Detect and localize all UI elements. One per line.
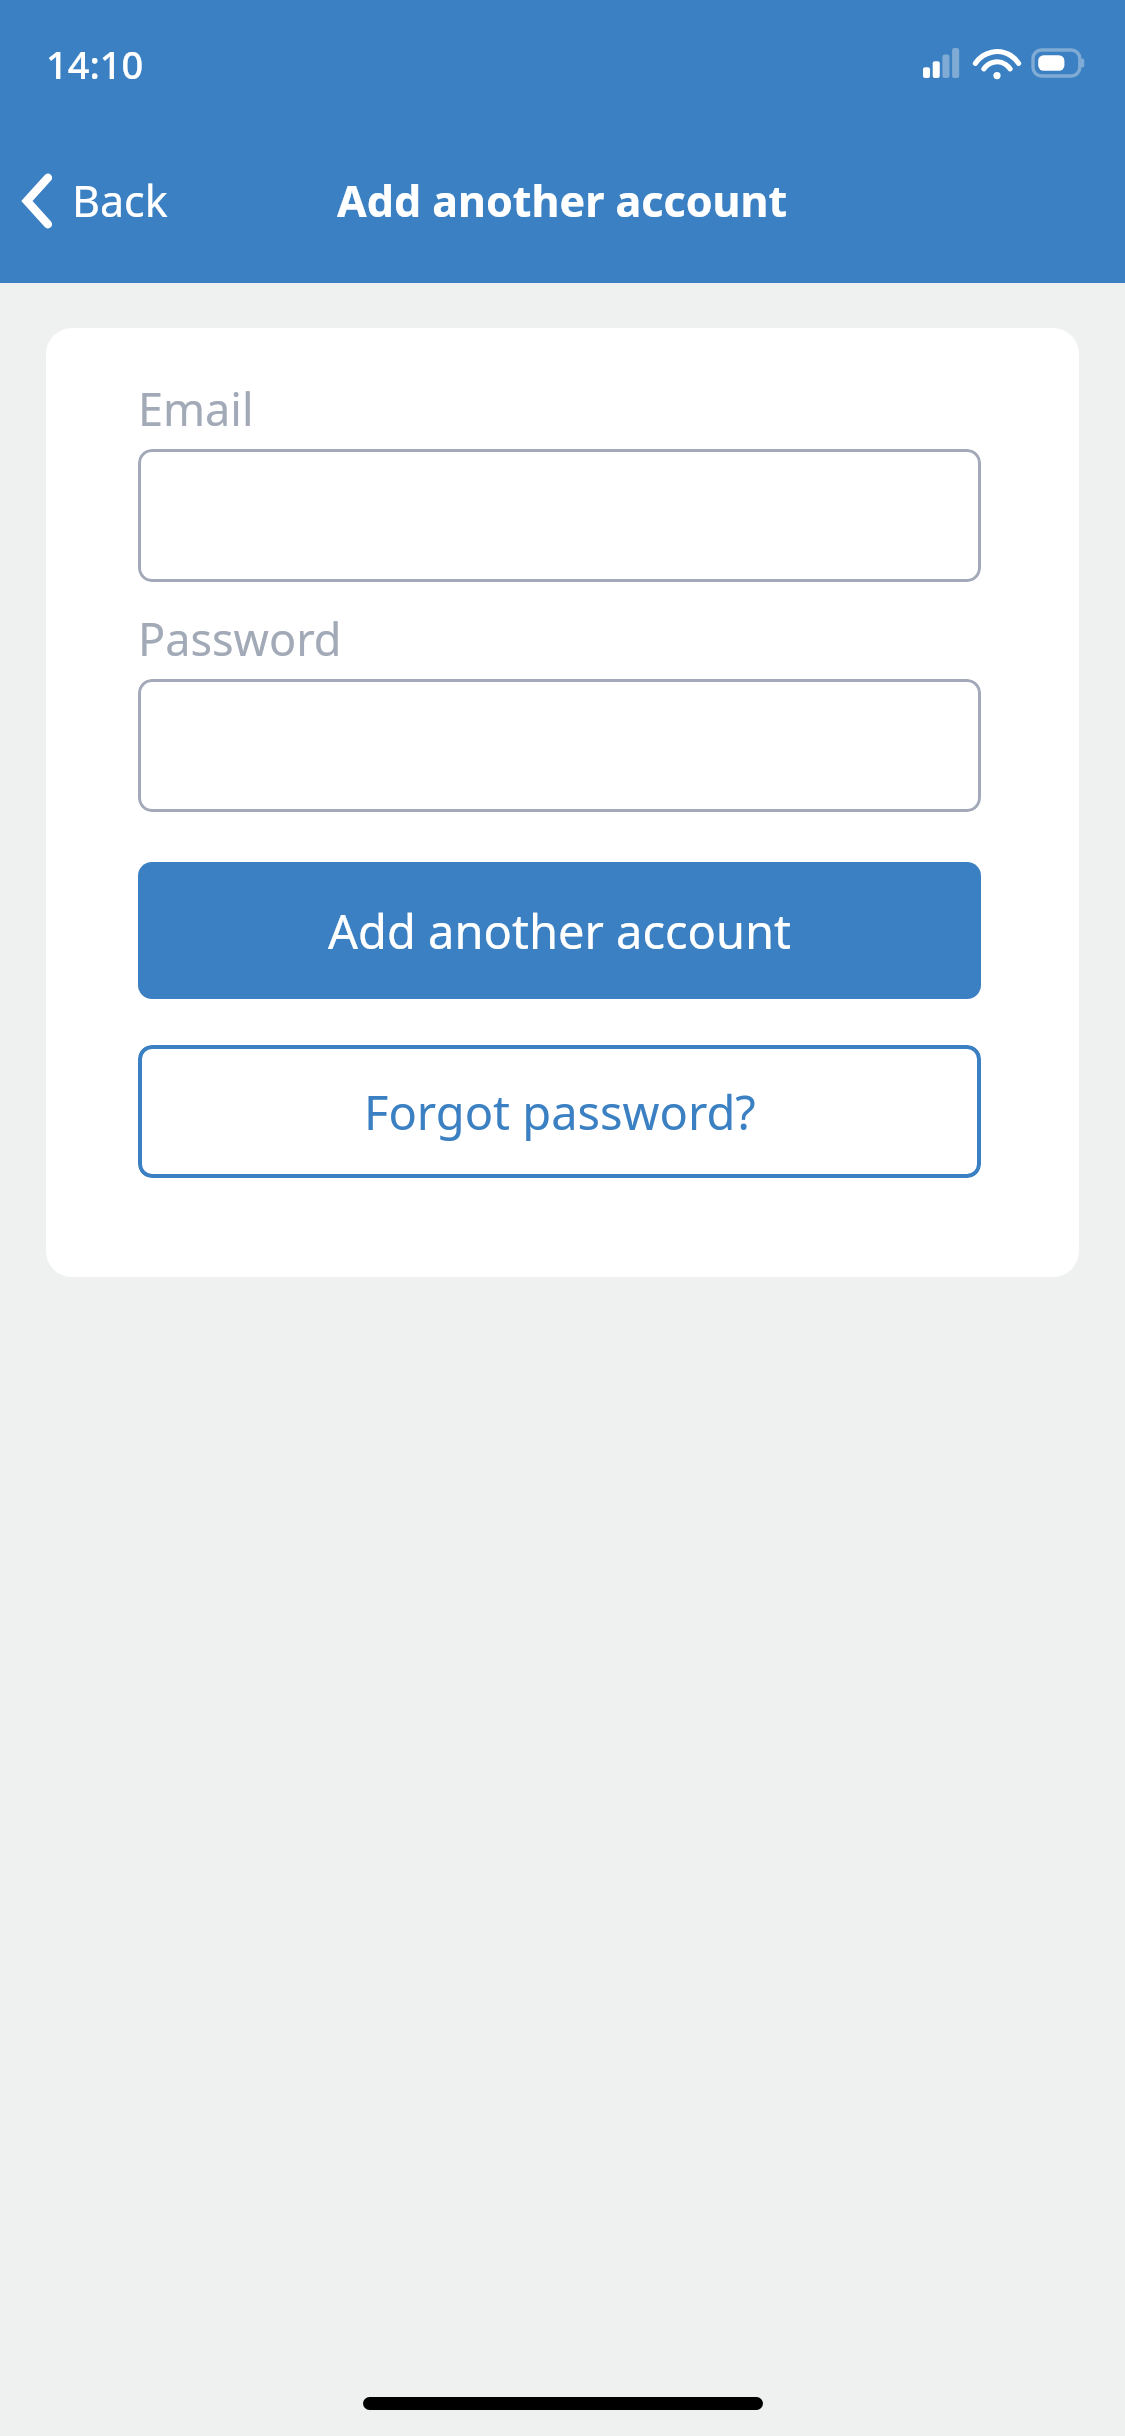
staticText: Back <box>72 171 168 230</box>
staticText: Add another account <box>328 899 792 963</box>
button[interactable]: Forgot password? <box>138 1045 981 1178</box>
staticText: 14:10 <box>46 38 144 90</box>
staticText: Email <box>138 378 254 439</box>
staticText: Password <box>138 608 342 669</box>
button[interactable]: Password field <box>138 679 981 812</box>
staticText: Add another account <box>337 171 788 230</box>
button[interactable]: Back <box>0 157 188 244</box>
staticText: Forgot password? <box>364 1080 756 1144</box>
button[interactable]: Add another account <box>138 862 981 999</box>
button[interactable]: Email field <box>138 449 981 582</box>
